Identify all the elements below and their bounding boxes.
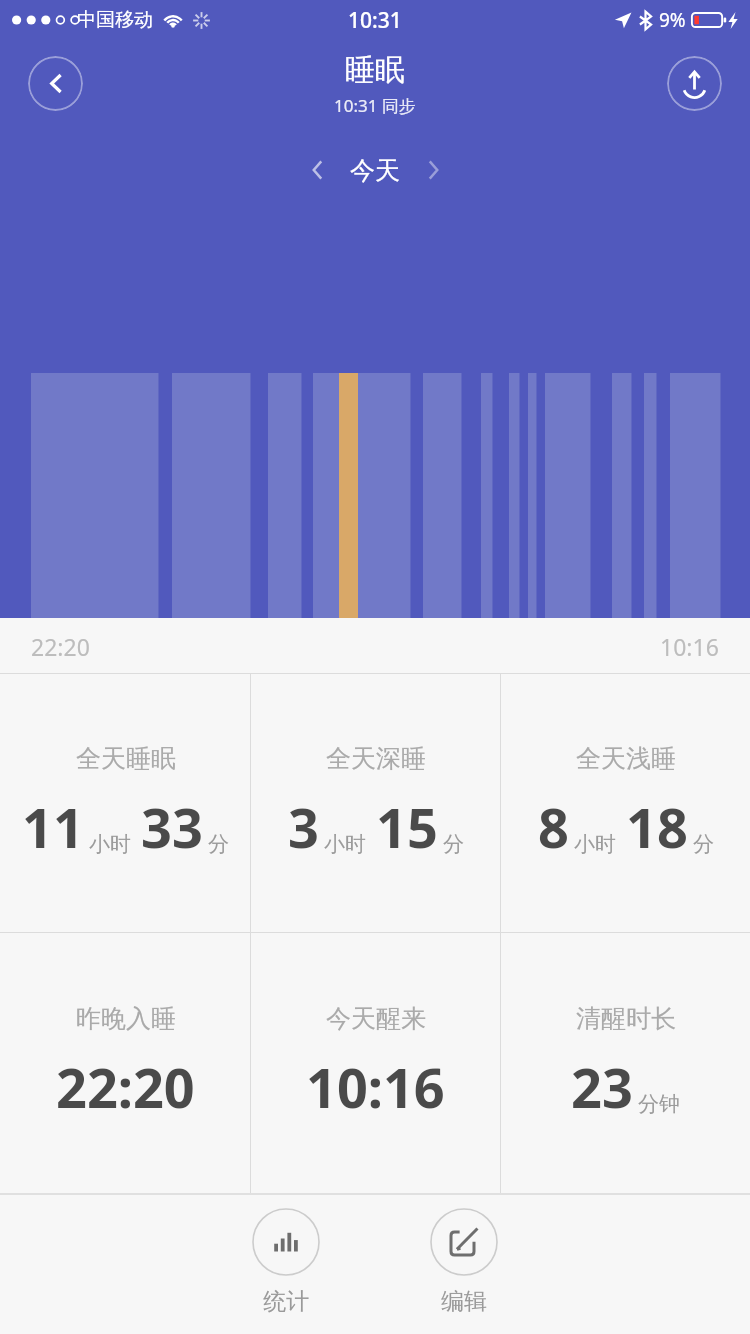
staticText: 小时 bbox=[574, 831, 616, 857]
staticText: 全天睡眠 bbox=[76, 743, 176, 774]
staticText: 小时 bbox=[324, 831, 366, 857]
staticText: 分钟 bbox=[638, 1091, 680, 1117]
staticText: 全天浅睡 bbox=[576, 743, 676, 774]
staticText: 9% bbox=[659, 7, 686, 33]
button[interactable]: 全天深睡 bbox=[251, 674, 500, 932]
staticText: 10:31 同步 bbox=[334, 94, 416, 117]
staticText: 分 bbox=[208, 831, 229, 857]
button[interactable]: Back bbox=[28, 56, 83, 111]
staticText: 小时 bbox=[89, 831, 131, 857]
staticText: 18 bbox=[626, 790, 688, 864]
button[interactable]: Statistics bbox=[226, 1208, 346, 1316]
staticText: 今天醒来 bbox=[326, 1003, 426, 1034]
staticText: 编辑 bbox=[441, 1287, 487, 1316]
staticText: 15 bbox=[376, 790, 438, 864]
staticText: 昨晚入睡 bbox=[76, 1003, 176, 1034]
staticText: 23 bbox=[571, 1050, 633, 1124]
staticText: 睡眠 bbox=[345, 51, 405, 89]
staticText: 清醒时长 bbox=[576, 1003, 676, 1034]
staticText: 10:16 bbox=[306, 1050, 445, 1124]
button[interactable]: Sync bbox=[667, 56, 722, 111]
staticText: 33 bbox=[141, 790, 203, 864]
staticText: 3 bbox=[288, 790, 319, 864]
button[interactable]: 今天醒来 bbox=[251, 933, 500, 1193]
staticText: 10:31 bbox=[348, 6, 402, 35]
button[interactable]: Edit bbox=[404, 1208, 524, 1316]
button[interactable]: Next day bbox=[410, 147, 456, 193]
staticText: 10:16 bbox=[660, 631, 719, 662]
staticText: 分 bbox=[443, 831, 464, 857]
button[interactable]: 全天浅睡 bbox=[501, 674, 750, 932]
staticText: 22:20 bbox=[56, 1050, 195, 1124]
staticText: 分 bbox=[693, 831, 714, 857]
staticText: 全天深睡 bbox=[326, 743, 426, 774]
staticText: 统计 bbox=[263, 1287, 309, 1316]
button[interactable]: 清醒时长 bbox=[501, 933, 750, 1193]
button[interactable]: 全天睡眠 bbox=[0, 674, 250, 932]
button[interactable]: 今天 bbox=[350, 155, 400, 186]
button[interactable]: 昨晚入睡 bbox=[0, 933, 250, 1193]
staticText: 中国移动 bbox=[77, 8, 153, 32]
staticText: 8 bbox=[538, 790, 569, 864]
staticText: 11 bbox=[22, 790, 84, 864]
staticText: 22:20 bbox=[31, 631, 90, 662]
button[interactable]: Previous day bbox=[294, 147, 340, 193]
